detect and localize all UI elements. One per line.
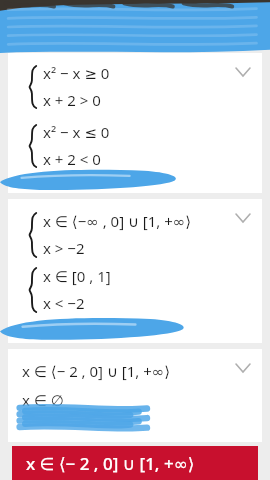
staticText: x ∈ ⟨− 2 , 0] ∪ [1, +∞⟩ — [26, 452, 195, 475]
staticText: x² − x ≤ 0 — [43, 122, 110, 142]
staticText: x² − x ≥ 0 — [43, 63, 110, 83]
staticText: x < −2 — [43, 293, 85, 313]
button[interactable]: Collapse step — [230, 205, 256, 231]
button[interactable]: Collapse step — [230, 59, 256, 85]
button[interactable]: x² − x ≥ 0 — [8, 53, 262, 193]
staticText: x ∈ ∅ — [22, 390, 64, 410]
staticText: x + 2 > 0 — [43, 90, 101, 110]
button[interactable]: x ∈ ⟨− 2 , 0] ∪ [1, +∞⟩ — [8, 349, 262, 442]
staticText: x ∈ ⟨− 2 , 0] ∪ [1, +∞⟩ — [22, 361, 171, 381]
staticText: x > −2 — [43, 238, 85, 258]
button[interactable]: x ∈ ⟨− 2 , 0] ∪ [1, +∞⟩ — [12, 446, 258, 480]
button[interactable]: x ∈ ⟨−∞ , 0] ∪ [1, +∞⟩ — [8, 199, 262, 343]
button[interactable]: Collapse step — [230, 355, 256, 381]
staticText: x ∈ ⟨−∞ , 0] ∪ [1, +∞⟩ — [43, 211, 192, 231]
staticText: x + 2 < 0 — [43, 149, 101, 169]
staticText: x ∈ [0 , 1] — [43, 266, 111, 286]
